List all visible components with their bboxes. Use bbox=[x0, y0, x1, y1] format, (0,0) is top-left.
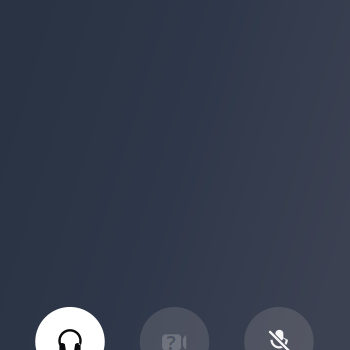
button[interactable]: Camera bbox=[140, 307, 209, 350]
button[interactable]: Unmute bbox=[244, 307, 314, 350]
button[interactable]: Audio output bbox=[35, 307, 105, 350]
staticText: ? bbox=[166, 329, 175, 350]
